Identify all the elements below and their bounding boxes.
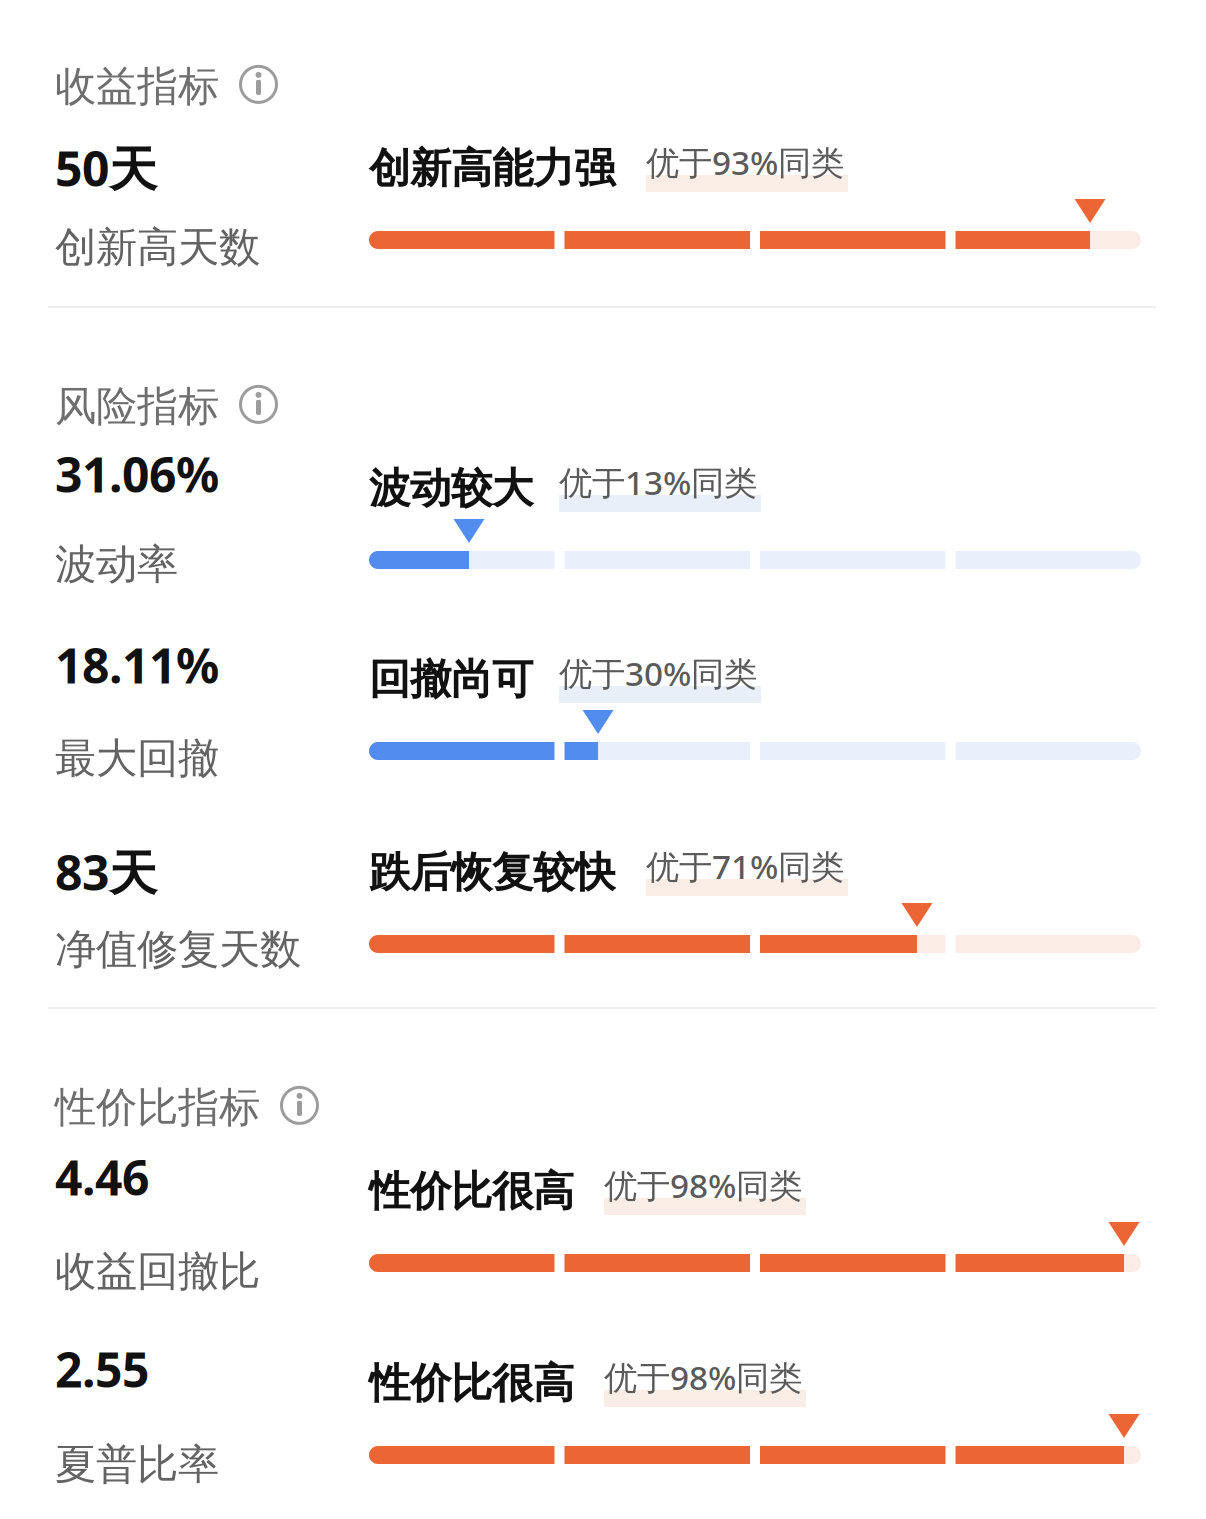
staticText: 4.46: [55, 1145, 149, 1209]
staticText: 优于13%同类: [559, 460, 757, 504]
staticText: 优于98%同类: [604, 1355, 802, 1399]
staticText: 创新高天数: [55, 222, 260, 273]
staticText: 收益指标: [55, 61, 219, 112]
staticText: 性价比很高: [369, 1358, 574, 1409]
staticText: 净值修复天数: [55, 924, 301, 975]
staticText: 创新高能力强: [369, 143, 615, 194]
staticText: 优于93%同类: [646, 140, 844, 184]
staticText: 18.11%: [55, 633, 219, 697]
staticText: 跌后恢复较快: [369, 847, 615, 898]
staticText: 回撤尚可: [369, 654, 533, 705]
staticText: 性价比指标: [55, 1082, 260, 1133]
staticText: 50天: [55, 136, 157, 200]
staticText: 波动率: [55, 539, 178, 590]
staticText: 2.55: [55, 1337, 149, 1401]
staticText: 优于30%同类: [559, 651, 757, 695]
staticText: 收益回撤比: [55, 1246, 260, 1297]
staticText: 最大回撤: [55, 733, 219, 784]
staticText: 83天: [55, 840, 157, 904]
staticText: 风险指标: [55, 381, 219, 432]
staticText: 优于98%同类: [604, 1163, 802, 1207]
button[interactable]: 性价比指标: [55, 1082, 319, 1133]
button[interactable]: 风险指标: [55, 381, 278, 432]
staticText: 性价比很高: [369, 1166, 574, 1217]
staticText: 夏普比率: [55, 1439, 219, 1490]
staticText: 波动较大: [369, 463, 533, 514]
staticText: 优于71%同类: [646, 844, 844, 888]
button[interactable]: 收益指标: [55, 61, 278, 112]
staticText: 31.06%: [55, 442, 219, 506]
